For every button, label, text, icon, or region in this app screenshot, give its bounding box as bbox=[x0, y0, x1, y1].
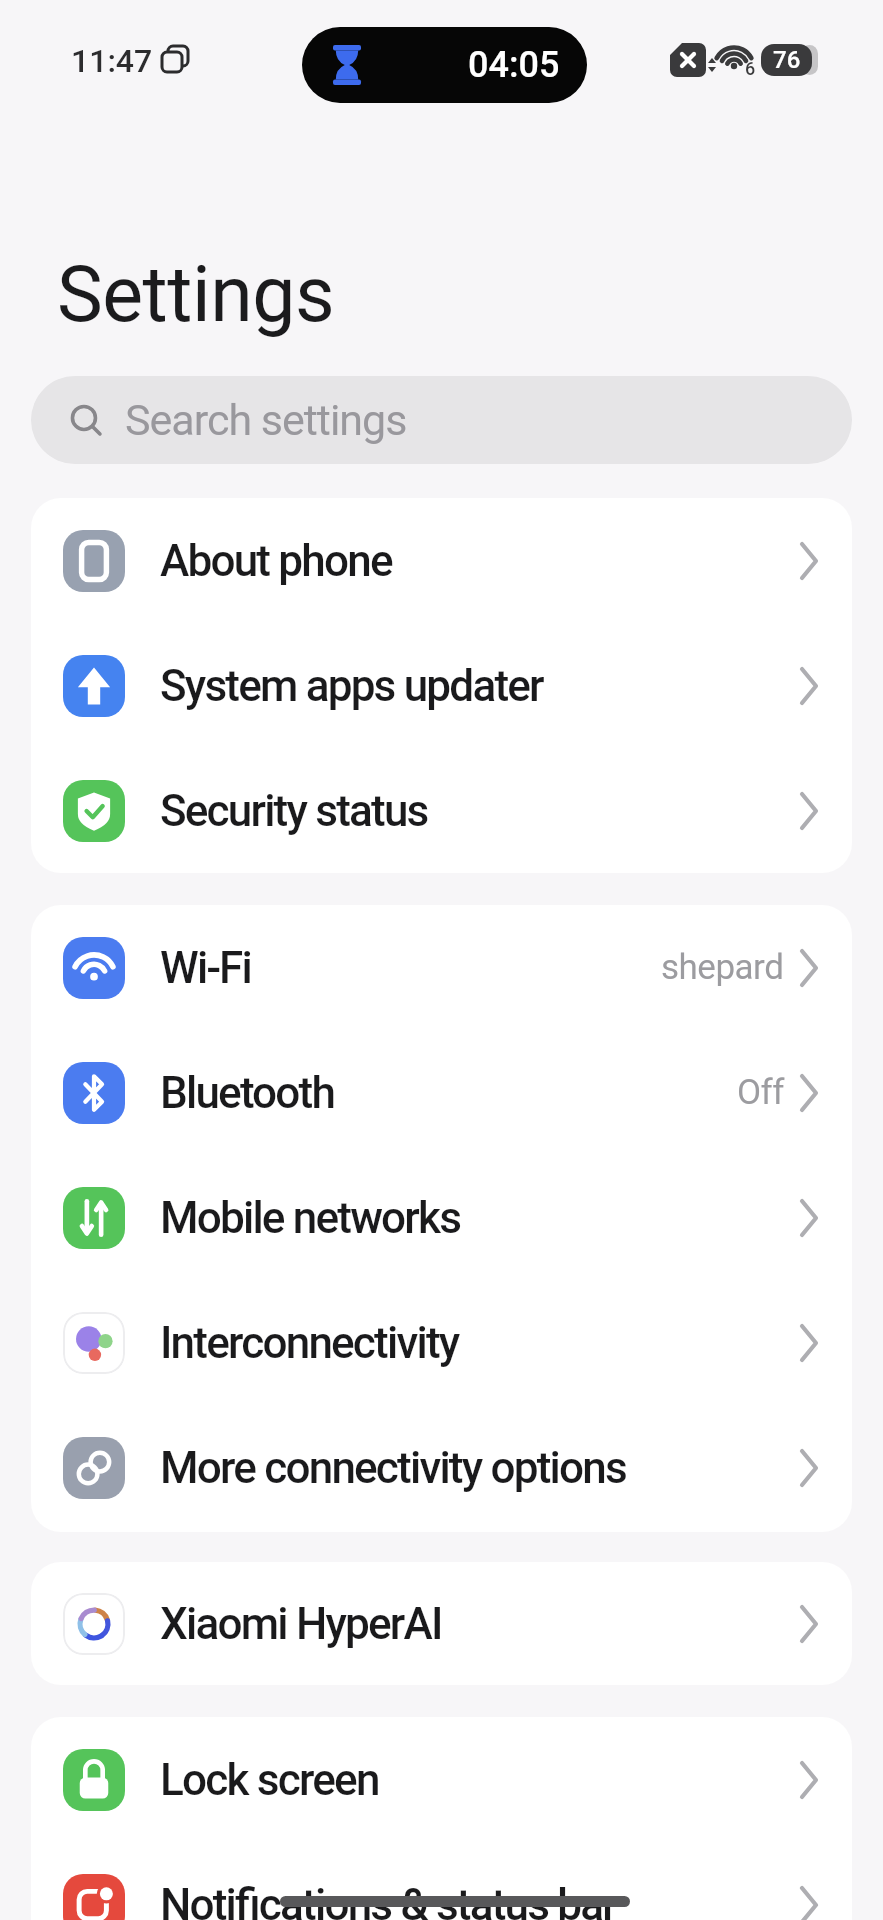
staticText: Search settings bbox=[125, 395, 407, 445]
staticText: 04:05 bbox=[468, 44, 560, 86]
button[interactable]: Mobile networks bbox=[31, 1155, 852, 1280]
staticText: 76 bbox=[773, 46, 801, 74]
button[interactable]: Interconnectivity bbox=[31, 1280, 852, 1405]
staticText: Settings bbox=[57, 250, 335, 340]
staticText: Off bbox=[737, 1072, 784, 1113]
staticText: shepard bbox=[661, 947, 784, 988]
staticText: More connectivity options bbox=[160, 1442, 626, 1494]
staticText: System apps updater bbox=[160, 660, 543, 712]
staticText: About phone bbox=[160, 535, 392, 587]
button[interactable]: Lock screen bbox=[31, 1717, 852, 1842]
staticText: 11:47 bbox=[71, 42, 153, 80]
button[interactable]: Xiaomi HyperAI bbox=[31, 1562, 852, 1685]
button[interactable]: System apps updater bbox=[31, 623, 852, 748]
staticText: Notifications & status bar bbox=[160, 1879, 616, 1920]
staticText: 6 bbox=[745, 58, 756, 79]
staticText: Security status bbox=[160, 785, 428, 837]
button[interactable]: Security status bbox=[31, 748, 852, 873]
button[interactable]: Bluetooth bbox=[31, 1030, 852, 1155]
staticText: Xiaomi HyperAI bbox=[160, 1598, 442, 1650]
button[interactable]: More connectivity options bbox=[31, 1405, 852, 1530]
staticText: Interconnectivity bbox=[160, 1317, 459, 1369]
button[interactable]: Notifications & status bar bbox=[31, 1842, 852, 1920]
button[interactable]: 04:05 bbox=[302, 27, 587, 103]
staticText: Bluetooth bbox=[160, 1067, 335, 1119]
button[interactable]: Wi-Fi bbox=[31, 905, 852, 1030]
button[interactable]: About phone bbox=[31, 498, 852, 623]
button[interactable]: Search settings bbox=[31, 376, 852, 464]
staticText: Lock screen bbox=[160, 1754, 379, 1806]
staticText: Wi-Fi bbox=[160, 942, 251, 994]
staticText: Mobile networks bbox=[160, 1192, 461, 1244]
